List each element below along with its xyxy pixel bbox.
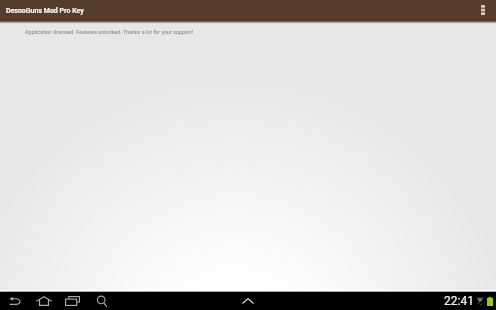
button[interactable]: Back xyxy=(0,292,29,310)
button[interactable]: Show notifications xyxy=(234,292,262,310)
staticText: DesnoGuns Mod Pro Key xyxy=(6,7,84,15)
button[interactable]: Home xyxy=(29,292,58,310)
button[interactable]: Search xyxy=(87,292,116,310)
button[interactable]: Recent apps xyxy=(58,292,87,310)
staticText: 22:41 xyxy=(444,294,474,308)
staticText: Application licensed. Features unlocked.… xyxy=(25,29,194,35)
button[interactable]: More options xyxy=(470,0,496,20)
